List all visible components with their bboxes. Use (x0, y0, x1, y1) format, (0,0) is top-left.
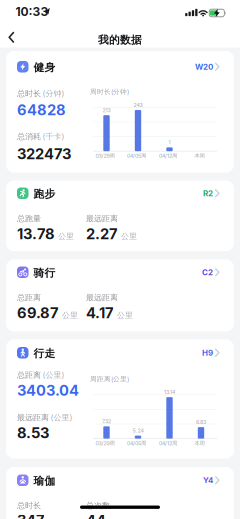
staticText: 64828 (17, 101, 66, 118)
staticText: (公里) (50, 413, 72, 422)
staticText: 健身 (33, 61, 55, 74)
staticText: 6.83 (196, 419, 206, 425)
staticText: 13.78 (17, 225, 55, 243)
staticText: (公里) (42, 370, 64, 380)
button[interactable]: 行走 (6, 341, 234, 365)
staticText: 13.14 (164, 389, 175, 395)
staticText: 213 (102, 107, 110, 113)
staticText: H9 (202, 348, 213, 357)
button[interactable]: 骑行 (6, 260, 234, 284)
button[interactable]: 跑步 (6, 181, 234, 205)
staticText: 最远距离 (17, 413, 49, 422)
staticText: 总跑量 (17, 214, 41, 223)
staticText: 瑜伽 (33, 474, 55, 487)
staticText: 04/05周 (127, 440, 146, 446)
staticText: 最远距离 (86, 293, 118, 302)
staticText: 3403.04 (17, 382, 79, 399)
staticText: 我的数据 (98, 33, 142, 46)
staticText: 总时长 (17, 89, 41, 98)
staticText: 本周 (194, 152, 204, 159)
staticText: 243 (133, 102, 142, 108)
staticText: 跑步 (33, 187, 55, 200)
staticText: 10:33 (15, 4, 48, 19)
staticText: (分钟) (42, 89, 64, 98)
staticText: 44 (86, 511, 106, 519)
staticText: 总次数 (86, 501, 110, 510)
staticText: 69.87 (17, 304, 59, 322)
staticText: 公里 (62, 310, 78, 320)
staticText: 5.24 (132, 427, 143, 434)
button[interactable]: 瑜伽 (6, 468, 234, 492)
staticText: 03/29周 (95, 152, 114, 159)
staticText: R2 (203, 188, 213, 198)
staticText: 03/29周 (95, 440, 114, 446)
staticText: 总时长 (17, 501, 41, 510)
staticText: 8.53 (17, 424, 49, 442)
staticText: 总消耗 (17, 132, 41, 141)
staticText: 行走 (33, 347, 55, 360)
staticText: 总距离 (17, 370, 41, 380)
staticText: 公里 (121, 231, 137, 241)
staticText: 347 (17, 511, 45, 519)
staticText: 周时长(分钟) (90, 88, 129, 96)
staticText: 04/12周 (159, 152, 177, 159)
staticText: (千卡) (42, 132, 64, 141)
staticText: 04/05周 (127, 152, 146, 159)
staticText: 04/12周 (159, 440, 177, 446)
button[interactable]: Back (4, 30, 18, 44)
staticText: 最远距离 (86, 214, 118, 223)
staticText: Y4 (203, 475, 213, 485)
staticText: 本周 (194, 440, 204, 446)
staticText: 公里 (117, 310, 133, 320)
staticText: 322473 (17, 145, 71, 163)
staticText: 总距离 (17, 293, 41, 302)
staticText: 7.32 (102, 418, 111, 424)
staticText: 4.17 (86, 304, 114, 322)
button[interactable]: 健身 (6, 55, 234, 79)
staticText: C2 (202, 267, 213, 277)
staticText: 周距离(公里) (90, 375, 129, 383)
staticText: 公里 (58, 231, 74, 241)
staticText: W20 (195, 62, 213, 71)
staticText: 2.27 (86, 225, 118, 243)
staticText: 1 (168, 139, 170, 146)
staticText: 骑行 (33, 266, 55, 279)
